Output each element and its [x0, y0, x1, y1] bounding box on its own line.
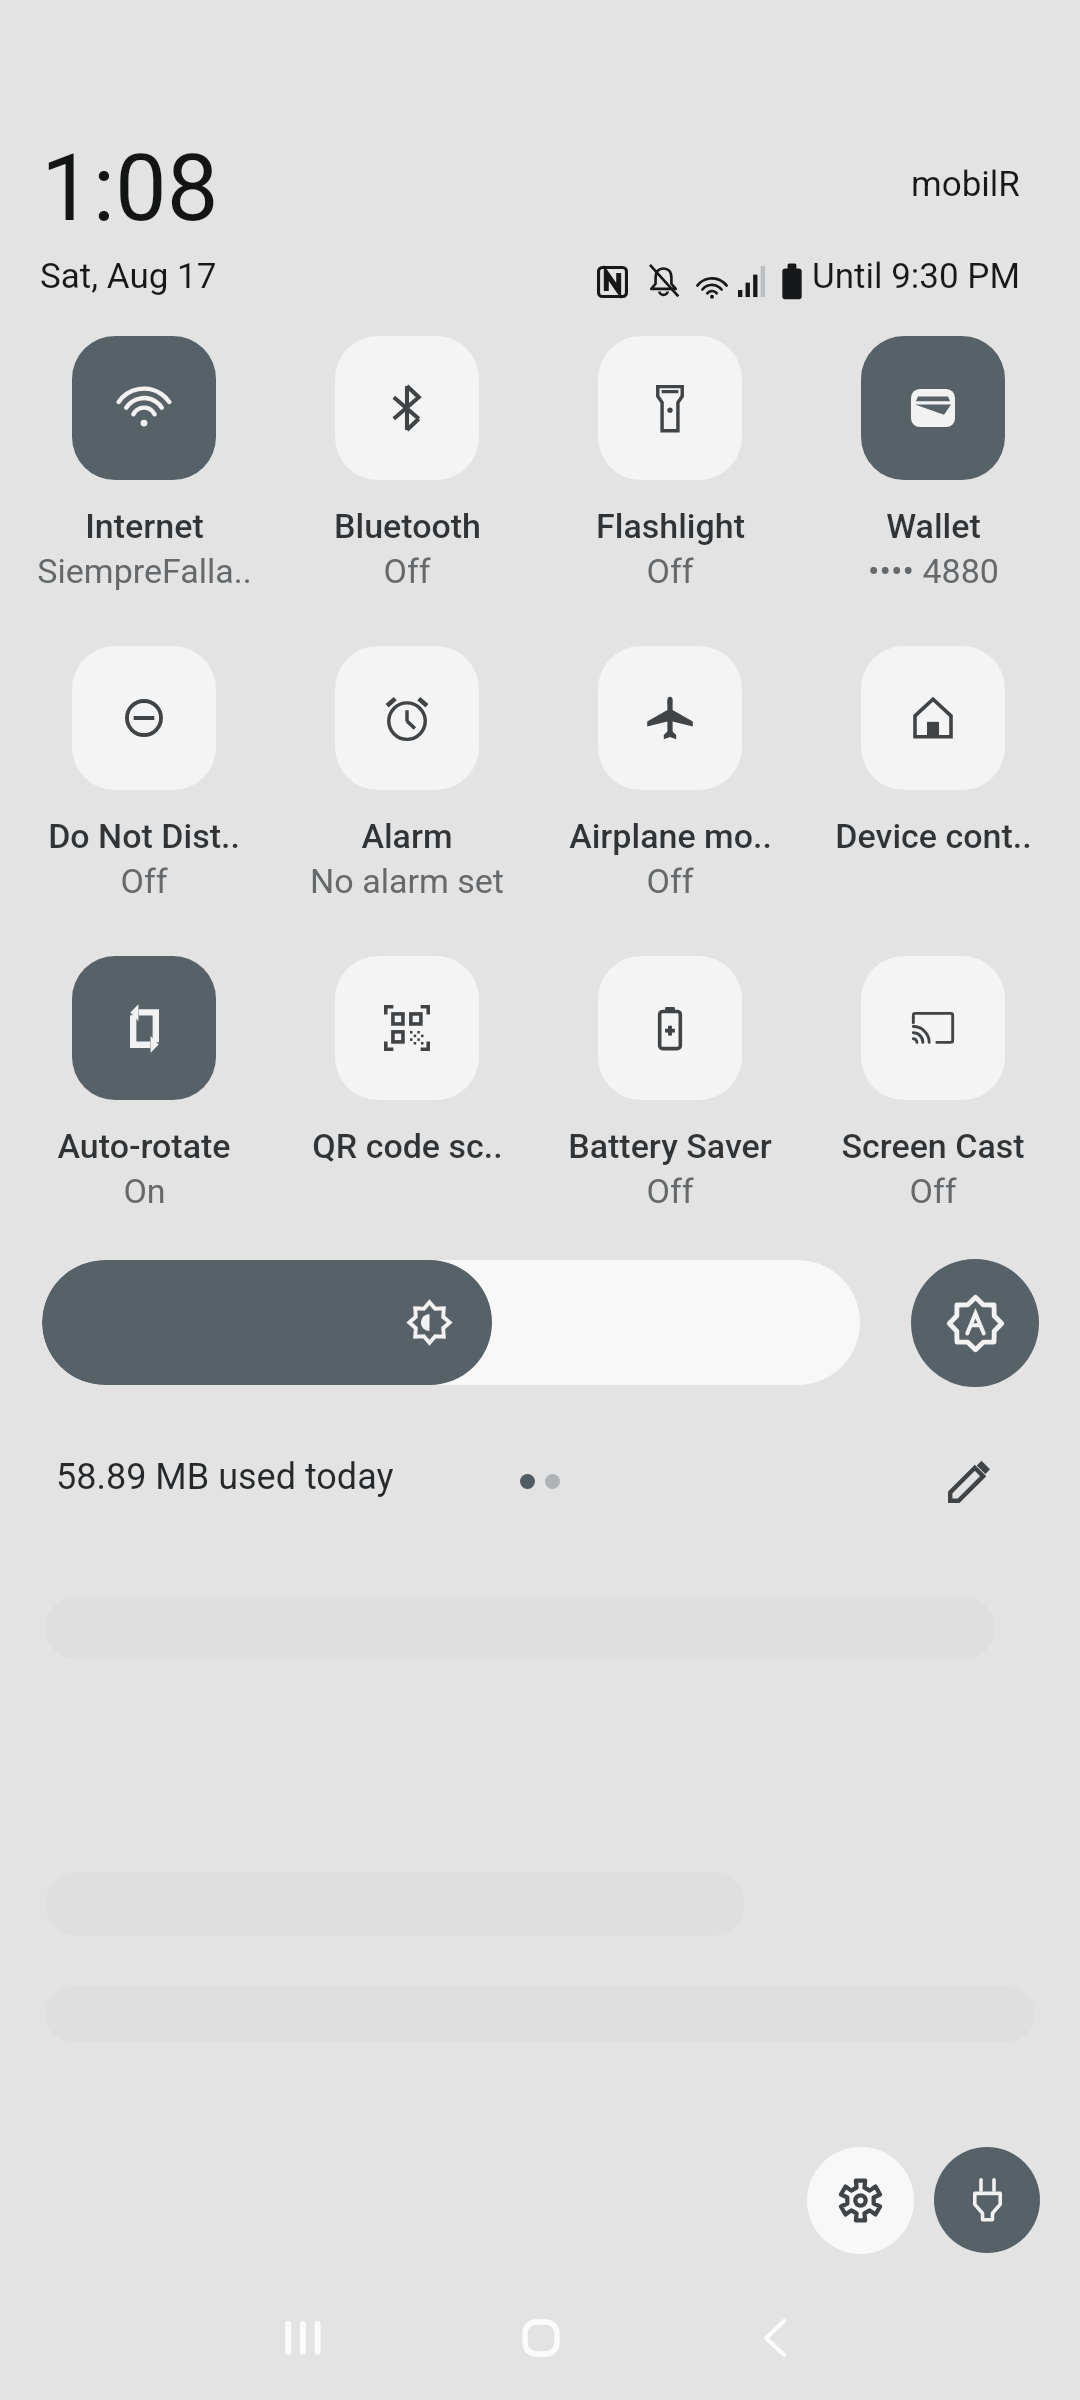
staticText: QR code sc..: [312, 1126, 503, 1166]
button[interactable]: QR code sc..: [279, 956, 535, 1166]
staticText: Do Not Dist..: [48, 816, 240, 856]
staticText: Off: [646, 861, 694, 901]
staticText: No alarm set: [310, 861, 504, 901]
button[interactable]: Power: [934, 2147, 1040, 2253]
button[interactable]: Bluetooth: [279, 336, 535, 591]
button[interactable]: Alarm: [279, 646, 535, 901]
staticText: On: [123, 1171, 166, 1211]
staticText: Device cont..: [835, 816, 1032, 856]
button[interactable]: Do Not Dist..: [16, 646, 272, 901]
staticText: Sat, Aug 17: [40, 256, 217, 297]
staticText: Until 9:30 PM: [812, 256, 1020, 297]
staticText: Alarm: [361, 816, 453, 856]
staticText: Screen Cast: [841, 1126, 1025, 1166]
button[interactable]: Device cont..: [805, 646, 1061, 856]
button[interactable]: Back: [740, 2303, 810, 2373]
staticText: Bluetooth: [334, 506, 481, 546]
staticText: Off: [646, 1171, 694, 1211]
button[interactable]: Recents: [268, 2303, 338, 2373]
staticText: •••• 4880: [868, 551, 999, 591]
button[interactable]: Auto-rotate: [16, 956, 272, 1211]
staticText: Auto-rotate: [57, 1126, 231, 1166]
staticText: Internet: [85, 506, 204, 546]
staticText: Off: [909, 1171, 957, 1211]
staticText: Battery Saver: [568, 1126, 772, 1166]
button[interactable]: Edit: [930, 1441, 1010, 1521]
button[interactable]: Screen Cast: [805, 956, 1061, 1211]
button[interactable]: Home: [506, 2303, 576, 2373]
button[interactable]: Brightness: [42, 1260, 860, 1385]
button[interactable]: Flashlight: [542, 336, 798, 591]
button[interactable]: Internet: [16, 336, 272, 591]
button[interactable]: Airplane mo..: [542, 646, 798, 901]
staticText: Off: [383, 551, 431, 591]
button[interactable]: Battery Saver: [542, 956, 798, 1211]
staticText: 1:08: [41, 135, 219, 243]
staticText: Off: [120, 861, 168, 901]
staticText: SiempreFalla..: [37, 551, 252, 591]
button[interactable]: Auto brightness: [911, 1259, 1039, 1387]
staticText: 58.89 MB used today: [56, 1456, 394, 1498]
staticText: mobilR: [911, 164, 1020, 205]
staticText: Off: [646, 551, 694, 591]
staticText: Wallet: [886, 506, 981, 546]
button[interactable]: Settings: [807, 2147, 914, 2254]
staticText: Flashlight: [596, 506, 745, 546]
staticText: Airplane mo..: [569, 816, 772, 856]
button[interactable]: Wallet: [805, 336, 1061, 591]
